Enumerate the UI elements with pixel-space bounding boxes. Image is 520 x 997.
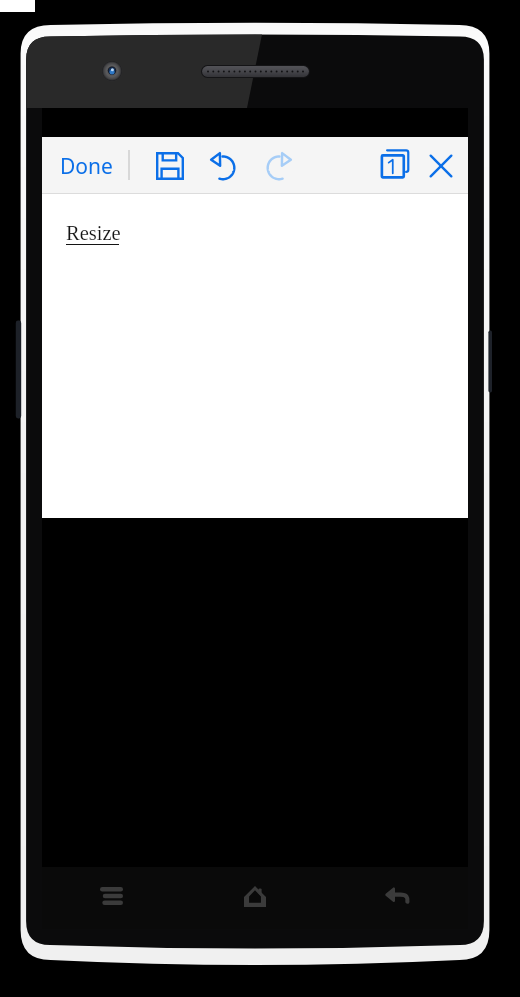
button[interactable]: Save [150, 146, 190, 186]
button[interactable]: Undo [202, 146, 242, 186]
staticText: Done [60, 152, 113, 181]
staticText: Resize [66, 222, 121, 245]
button[interactable]: Close [421, 146, 461, 186]
button[interactable]: Done [52, 146, 121, 187]
button[interactable]: Redo [259, 146, 299, 186]
button[interactable]: Tabs [374, 143, 414, 183]
button[interactable]: Recents [42, 867, 184, 929]
button[interactable]: Home [184, 867, 326, 929]
button[interactable]: Back [326, 867, 468, 929]
